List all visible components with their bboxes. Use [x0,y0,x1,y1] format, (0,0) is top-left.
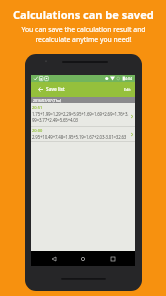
staticText: 2.95+10.49+7.48=1.95+5.19=1.67+2.03-3.01… [32,134,127,140]
staticText: 4:04 [125,76,133,81]
staticText: 2016/07/07 (Thu) [33,98,62,103]
button[interactable]: Recents [106,252,120,266]
button[interactable]: 20:00 [31,127,135,142]
button[interactable]: 20:51 [31,103,135,127]
button[interactable]: Back [47,252,61,266]
staticText: 1.75+1.99=1.29+2.29=5.95+1.69=1.69+2.69=… [32,111,129,117]
staticText: Calculations can be saved [13,7,154,22]
button[interactable]: Back [34,83,47,96]
button[interactable]: Home [76,252,90,266]
staticText: 20:00 [32,128,43,133]
staticText: You can save the calculation result and … [21,25,146,44]
button[interactable]: Edit [120,84,135,95]
staticText: Save list [46,86,65,93]
staticText: 99=3.77+2.49=5.65+4.03 [32,117,78,123]
staticText: 20:51 [32,105,43,110]
staticText: Edit [124,87,131,92]
